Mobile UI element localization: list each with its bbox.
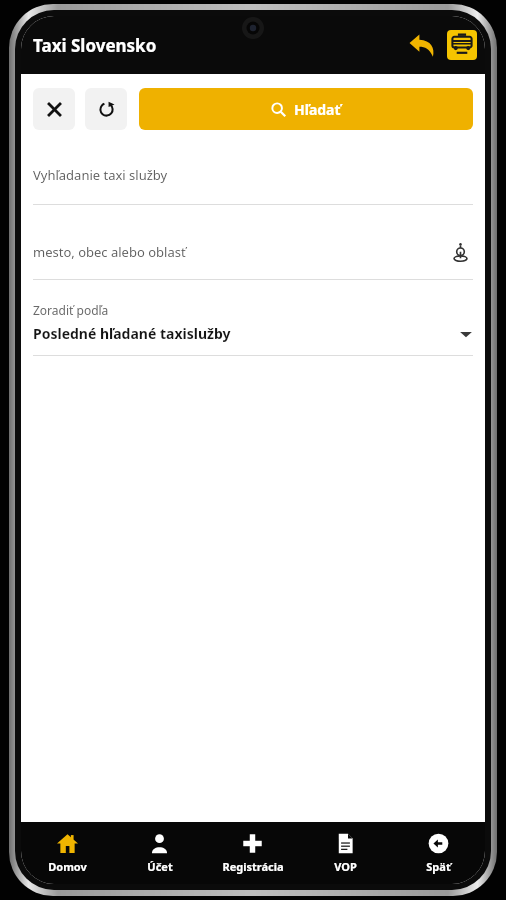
button[interactable]: mesto, obec alebo oblasť	[33, 239, 473, 280]
button[interactable]: Hľadať	[139, 88, 473, 130]
staticText: Posledné hľadané taxislužby	[33, 324, 459, 343]
staticText: Registrácia	[222, 859, 284, 874]
staticText: Hľadať	[294, 100, 341, 119]
staticText: Taxi Slovensko	[33, 34, 157, 57]
button[interactable]: Vyhľadanie taxi služby	[33, 166, 473, 205]
staticText: Účet	[147, 859, 173, 874]
button[interactable]: Účet	[113, 822, 206, 884]
button[interactable]: Späť	[403, 26, 441, 64]
button[interactable]: Moja poloha	[447, 239, 473, 265]
staticText: Zoradiť podľa	[33, 302, 109, 318]
button[interactable]: Zoradiť podľa	[33, 302, 473, 356]
staticText: Domov	[48, 859, 87, 874]
staticText: Vyhľadanie taxi služby	[33, 166, 168, 184]
button[interactable]: Späť	[392, 822, 485, 884]
button[interactable]: Domov	[21, 822, 113, 884]
staticText: VOP	[334, 859, 357, 874]
staticText: Späť	[426, 859, 451, 874]
button[interactable]: Taxi	[447, 30, 477, 60]
button[interactable]: Obnoviť	[85, 88, 127, 130]
staticText: mesto, obec alebo oblasť	[33, 243, 447, 261]
button[interactable]: Registrácia	[206, 822, 299, 884]
button[interactable]: VOP	[299, 822, 392, 884]
button[interactable]: Zavrieť	[33, 88, 75, 130]
